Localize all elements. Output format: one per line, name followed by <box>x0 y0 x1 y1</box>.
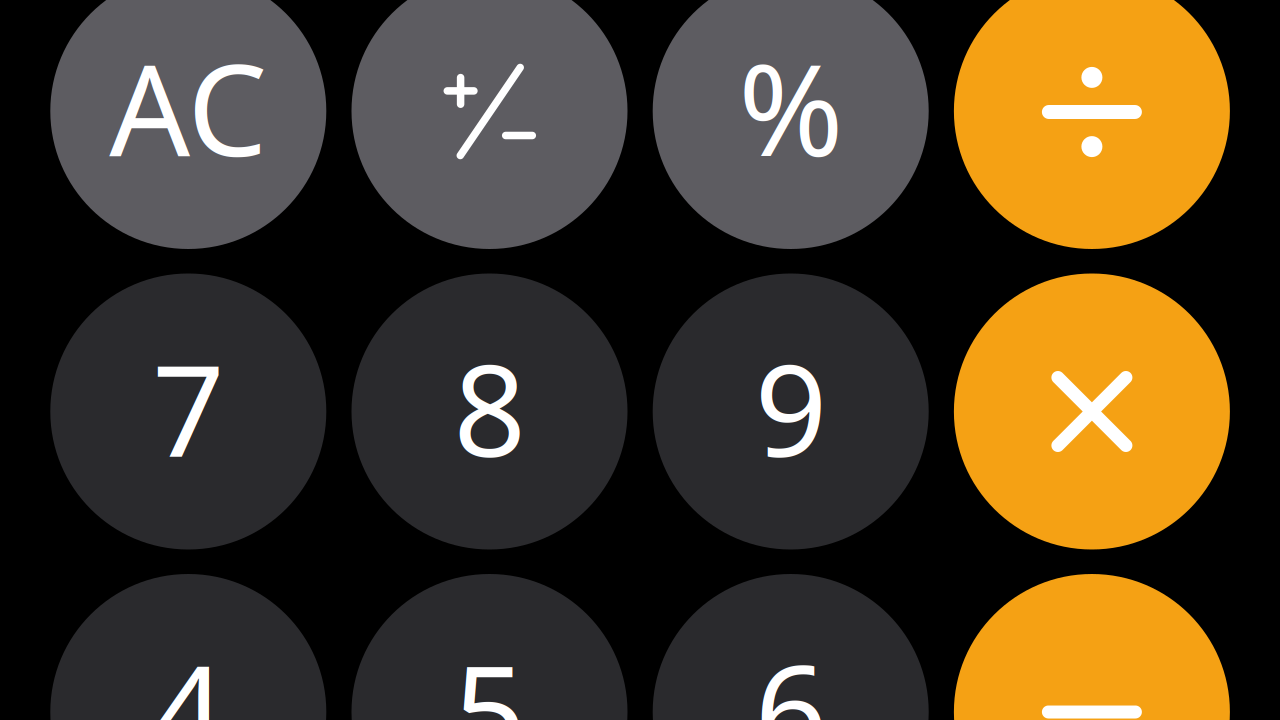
button[interactable]: 4 <box>50 574 326 720</box>
staticText: 4 <box>152 624 224 720</box>
staticText: 8 <box>453 323 525 492</box>
button[interactable]: % <box>653 0 929 249</box>
button[interactable]: Divide <box>954 0 1230 249</box>
button[interactable]: Multiply <box>954 273 1230 549</box>
button[interactable]: Minus <box>954 574 1230 720</box>
button[interactable]: 7 <box>50 273 326 549</box>
staticText: 6 <box>755 624 827 720</box>
button[interactable]: AC <box>50 0 326 249</box>
staticText: 7 <box>152 323 224 492</box>
button[interactable]: 6 <box>653 574 929 720</box>
button[interactable]: 9 <box>653 273 929 549</box>
button[interactable]: Plus minus <box>351 0 627 249</box>
staticText: 9 <box>755 323 827 492</box>
staticText: 5 <box>453 624 525 720</box>
staticText: % <box>738 23 843 191</box>
staticText: AC <box>109 23 267 191</box>
button[interactable]: 5 <box>351 574 627 720</box>
button[interactable]: 8 <box>351 273 627 549</box>
